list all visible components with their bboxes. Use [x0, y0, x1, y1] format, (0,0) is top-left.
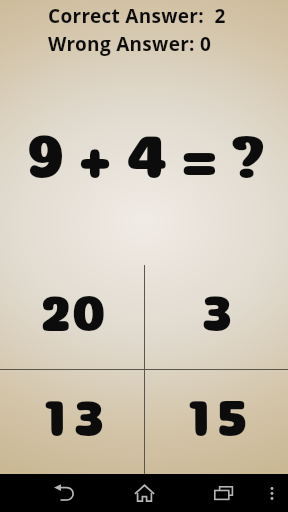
- button[interactable]: More options: [256, 474, 288, 512]
- button[interactable]: 1: [144, 370, 288, 474]
- button[interactable]: Recent apps: [184, 474, 264, 512]
- staticText: Wrong Answer: 0: [48, 31, 212, 57]
- button[interactable]: 1: [0, 370, 144, 474]
- staticText: 1: [188, 398, 211, 424]
- button[interactable]: 2: [0, 265, 144, 369]
- button[interactable]: 3: [144, 265, 288, 369]
- staticText: Correct Answer: 2: [48, 3, 226, 29]
- staticText: 9 + 4 = ?: [2, 132, 288, 163]
- staticText: 1: [44, 398, 67, 424]
- staticText: 5: [217, 398, 248, 424]
- staticText: 3: [74, 398, 104, 424]
- staticText: 2: [41, 293, 71, 319]
- staticText: 3: [202, 293, 232, 319]
- button[interactable]: Back: [24, 474, 104, 512]
- button[interactable]: Home: [104, 474, 184, 512]
- staticText: 0: [72, 293, 105, 319]
